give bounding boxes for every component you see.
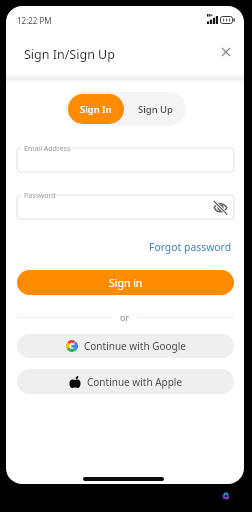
staticText: or	[120, 311, 130, 323]
button[interactable]: Email Address	[17, 148, 234, 172]
button[interactable]: Continue with Apple	[17, 369, 234, 394]
staticText: Continue with Google	[84, 339, 186, 353]
staticText: Email Address	[24, 144, 71, 154]
staticText: 12:22 PM	[17, 15, 52, 26]
button[interactable]: Password	[17, 195, 234, 219]
button[interactable]: Sign In	[68, 94, 124, 124]
staticText: Forgot password	[149, 240, 232, 254]
button[interactable]: Show password	[212, 199, 228, 215]
button[interactable]: Forgot password	[134, 237, 232, 257]
staticText: Sign Up	[138, 103, 174, 116]
staticText: Sign in	[109, 276, 143, 290]
button[interactable]: Close	[213, 39, 239, 65]
button[interactable]: Continue with Google	[17, 334, 234, 358]
button[interactable]: Sign Up	[126, 92, 186, 126]
staticText: Password	[24, 191, 56, 201]
staticText: Continue with Apple	[87, 375, 183, 389]
staticText: Sign In/Sign Up	[24, 46, 115, 63]
button[interactable]: Sign in	[17, 270, 234, 295]
staticText: Sign In	[80, 103, 112, 116]
